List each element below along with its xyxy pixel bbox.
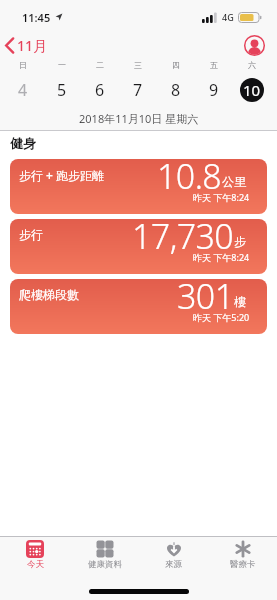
button[interactable]: 今天 — [0, 539, 70, 575]
staticText: 4 — [18, 79, 28, 101]
staticText: 17,730 — [132, 219, 234, 259]
staticText: 來源 — [165, 559, 182, 570]
staticText: 三 — [134, 60, 142, 70]
staticText: 2018年11月10日 星期六 — [79, 111, 199, 126]
staticText: 步行 + 跑步距離 — [19, 167, 105, 183]
staticText: 四 — [172, 60, 180, 70]
staticText: 樓 — [234, 294, 246, 309]
staticText: 醫療卡 — [230, 559, 256, 570]
staticText: 8 — [171, 79, 181, 101]
button[interactable]: 8 — [157, 74, 195, 106]
staticText: 爬樓梯段數 — [19, 287, 79, 302]
button[interactable]: 醫療卡 — [208, 539, 277, 575]
staticText: 10 — [243, 80, 261, 100]
staticText: 六 — [248, 60, 256, 70]
button[interactable]: 10 — [233, 74, 271, 106]
button[interactable] — [244, 35, 265, 56]
button[interactable]: 步行 + 跑步距離 — [10, 159, 267, 214]
staticText: 步行 — [19, 227, 43, 242]
staticText: 301 — [177, 279, 234, 319]
staticText: 步 — [234, 234, 246, 249]
staticText: 昨天 下午5:20 — [193, 311, 250, 323]
button[interactable]: 9 — [195, 74, 233, 106]
staticText: 10.8 — [157, 159, 222, 199]
button[interactable]: 來源 — [139, 539, 208, 575]
staticText: 健身 — [10, 135, 36, 151]
staticText: 五 — [210, 60, 218, 70]
staticText: 11:45 — [22, 10, 51, 25]
button[interactable]: 6 — [81, 74, 119, 106]
staticText: 二 — [96, 60, 104, 70]
button[interactable]: 健康資料 — [70, 539, 139, 575]
staticText: 11月 — [17, 36, 48, 55]
button[interactable]: 11月 — [4, 36, 48, 55]
staticText: 昨天 下午8:24 — [193, 251, 250, 263]
button[interactable]: 爬樓梯段數 — [10, 279, 267, 334]
button[interactable]: 5 — [42, 74, 81, 106]
staticText: 4G — [222, 11, 234, 23]
staticText: 一 — [58, 60, 66, 70]
staticText: 7 — [133, 79, 143, 101]
staticText: 昨天 下午8:24 — [193, 191, 250, 203]
staticText: 今天 — [27, 559, 44, 570]
staticText: 日 — [19, 60, 27, 70]
staticText: 9 — [209, 79, 219, 101]
staticText: 5 — [57, 79, 67, 101]
staticText: 公里 — [222, 174, 246, 189]
button[interactable]: 4 — [3, 74, 42, 106]
staticText: 健康資料 — [88, 559, 122, 570]
button[interactable]: 步行 — [10, 219, 267, 274]
button[interactable]: 7 — [119, 74, 157, 106]
staticText: 6 — [95, 79, 105, 101]
